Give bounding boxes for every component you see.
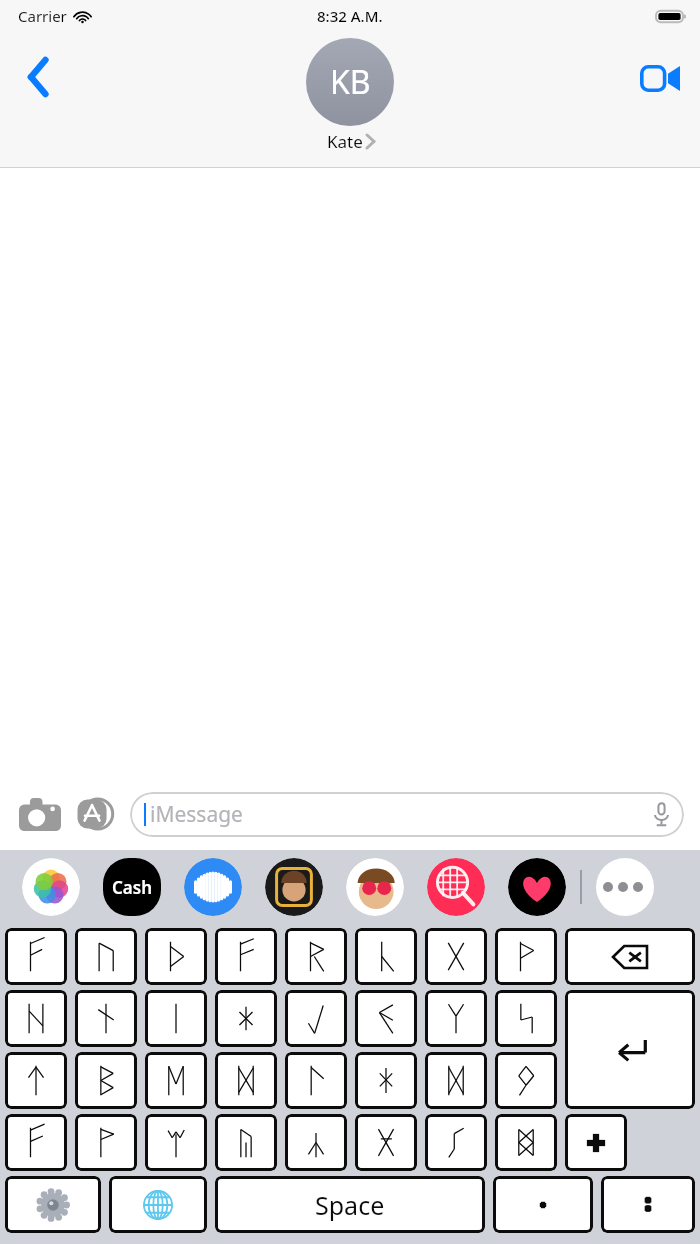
button[interactable]: Rune key [145, 990, 207, 1047]
staticText: Space [315, 1188, 385, 1222]
staticText: iMessage [150, 800, 243, 829]
button[interactable]: Cross rune [565, 1114, 627, 1171]
button[interactable]: Settings [5, 1176, 101, 1233]
button[interactable]: Rune key [75, 990, 137, 1047]
button[interactable]: Photos [22, 858, 80, 916]
button[interactable]: Memoji stickers [346, 858, 404, 916]
staticText: Cash [112, 876, 153, 899]
button[interactable]: Rune key [5, 990, 67, 1047]
button[interactable]: Rune key [495, 990, 557, 1047]
button[interactable]: Period rune [493, 1176, 593, 1233]
staticText: Kate [327, 130, 363, 153]
button[interactable]: Rune key [5, 1052, 67, 1109]
button[interactable]: Colon rune [601, 1176, 695, 1233]
button[interactable]: iMessage [144, 792, 670, 837]
button[interactable]: Return [565, 990, 695, 1109]
button[interactable]: Rune key [145, 928, 207, 985]
button[interactable]: Space [215, 1176, 485, 1233]
button[interactable]: Rune key [285, 990, 347, 1047]
button[interactable]: Rune key [5, 1114, 67, 1171]
button[interactable]: Rune key [5, 928, 67, 985]
button[interactable]: Rune key [285, 1052, 347, 1109]
button[interactable]: More apps [596, 858, 654, 916]
button[interactable]: Memoji camera [265, 858, 323, 916]
button[interactable]: Rune key [75, 1052, 137, 1109]
button[interactable]: Rune key [215, 928, 277, 985]
button[interactable]: Rune key [215, 1114, 277, 1171]
button[interactable]: Back [14, 52, 64, 102]
button[interactable]: Rune key [425, 1114, 487, 1171]
button[interactable]: Rune key [215, 1052, 277, 1109]
button[interactable]: #images [427, 858, 485, 916]
button[interactable]: Rune key [145, 1114, 207, 1171]
button[interactable]: Rune key [75, 1114, 137, 1171]
button[interactable]: Rune key [495, 1052, 557, 1109]
button[interactable]: Audio message [184, 858, 242, 916]
button[interactable]: App Store [70, 788, 122, 840]
button[interactable]: Switch keyboard [109, 1176, 207, 1233]
button[interactable]: Rune key [355, 1052, 417, 1109]
button[interactable]: Camera [16, 790, 64, 838]
button[interactable]: Rune key [355, 928, 417, 985]
button[interactable]: Rune key [285, 928, 347, 985]
button[interactable]: Rune key [145, 1052, 207, 1109]
button[interactable]: Rune key [75, 928, 137, 985]
button[interactable]: Digital Touch [508, 858, 566, 916]
staticText: KB [330, 60, 371, 104]
button[interactable]: Rune key [425, 990, 487, 1047]
button[interactable]: Rune key [215, 990, 277, 1047]
button[interactable]: Rune key [285, 1114, 347, 1171]
button[interactable]: Backspace [565, 928, 695, 985]
staticText: 8:32 A.M. [317, 6, 383, 26]
button[interactable]: FaceTime video call [634, 52, 686, 104]
staticText: Carrier [18, 6, 67, 26]
button[interactable]: Apple Cash [103, 858, 161, 916]
button[interactable]: Rune key [425, 928, 487, 985]
button[interactable]: Rune key [495, 928, 557, 985]
button[interactable]: Rune key [355, 1114, 417, 1171]
button[interactable]: KB [306, 38, 394, 153]
button[interactable]: Rune key [425, 1052, 487, 1109]
button[interactable]: Rune key [355, 990, 417, 1047]
button[interactable]: Rune key [495, 1114, 557, 1171]
